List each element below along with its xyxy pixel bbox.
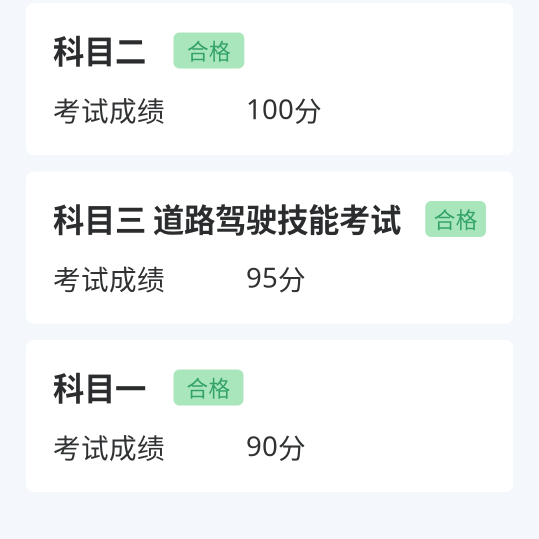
staticText: 考试成绩 — [53, 426, 165, 466]
staticText: 95分 — [246, 258, 306, 298]
staticText: 科目二 — [53, 27, 146, 72]
staticText: 科目三 道路驾驶技能考试 — [53, 195, 401, 241]
staticText: 考试成绩 — [53, 258, 165, 298]
staticText: 科目一 — [53, 364, 146, 409]
staticText: 合格 — [434, 203, 478, 234]
button[interactable]: 科目二 — [26, 3, 513, 155]
staticText: 合格 — [186, 371, 230, 402]
button[interactable]: 科目三 道路驾驶技能考试 — [26, 171, 513, 323]
staticText: 考试成绩 — [53, 89, 165, 129]
button[interactable]: 科目一 — [26, 340, 513, 492]
staticText: 100分 — [246, 89, 322, 129]
staticText: 合格 — [187, 34, 231, 65]
staticText: 90分 — [246, 426, 306, 466]
